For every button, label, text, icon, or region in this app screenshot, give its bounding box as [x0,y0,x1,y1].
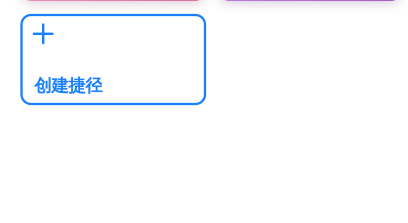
button[interactable]: 创建捷径 [21,15,205,104]
staticText: 创建捷径 [34,75,102,96]
